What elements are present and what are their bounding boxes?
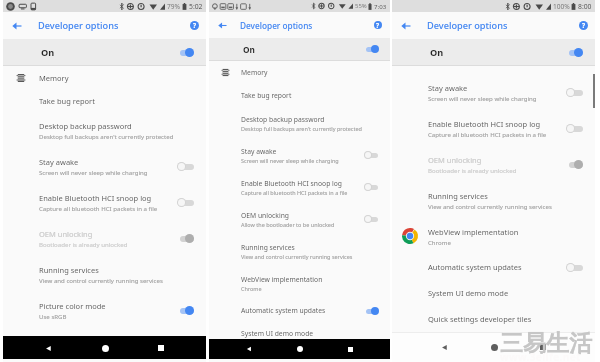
staticText: Desktop full backups aren't currently pr…: [39, 132, 174, 140]
staticText: WebView implementation: [241, 275, 323, 284]
staticText: Take bug report: [241, 91, 292, 100]
button[interactable]: OEM unlocking: [209, 203, 390, 235]
staticText: www.3elife.net: [500, 350, 581, 362]
button[interactable]: On: [3, 39, 206, 65]
staticText: Chrome: [428, 238, 451, 246]
staticText: Picture color mode: [39, 301, 106, 311]
staticText: Capture all bluetooth HCI packets in a f…: [39, 204, 158, 212]
staticText: Quick settings developer tiles: [428, 314, 532, 324]
staticText: Memory: [39, 73, 69, 83]
staticText: Allow the bootloader to be unlocked: [241, 221, 335, 228]
button[interactable]: Back: [41, 341, 55, 355]
button[interactable]: Enable Bluetooth HCI snoop log: [392, 110, 595, 146]
staticText: System UI demo mode: [241, 329, 314, 338]
button[interactable]: Enable Bluetooth HCI snoop log: [3, 184, 206, 220]
button[interactable]: Take bug report: [209, 84, 390, 107]
staticText: ?: [582, 21, 586, 30]
staticText: Automatic system updates: [241, 306, 326, 315]
staticText: System UI demo mode: [428, 288, 509, 298]
button[interactable]: Picture color mode: [3, 292, 206, 328]
button[interactable]: Stay awake: [3, 148, 206, 184]
staticText: Developer options: [38, 19, 119, 32]
staticText: 三易生活: [500, 329, 592, 358]
staticText: View and control currently running servi…: [428, 202, 552, 210]
staticText: Capture all bluetooth HCI packets in a f…: [241, 189, 348, 196]
staticText: OEM unlocking: [39, 229, 93, 239]
staticText: 8:00: [578, 2, 592, 11]
staticText: ?: [193, 21, 197, 30]
staticText: OEM unlocking: [428, 155, 482, 165]
staticText: Enable Bluetooth HCI snoop log: [241, 179, 343, 188]
button[interactable]: WebView implementation: [392, 218, 595, 254]
staticText: ?: [376, 21, 380, 29]
button[interactable]: Help: [571, 12, 595, 39]
button[interactable]: Desktop backup password: [3, 112, 206, 148]
staticText: Screen will never sleep while charging: [241, 157, 339, 164]
button[interactable]: Automatic system updates: [392, 254, 595, 280]
staticText: Enable Bluetooth HCI snoop log: [428, 119, 541, 129]
button[interactable]: Home: [293, 342, 307, 356]
staticText: Screen will never sleep while charging: [428, 94, 537, 102]
button[interactable]: Help: [182, 12, 206, 39]
button[interactable]: Running services: [3, 256, 206, 292]
button[interactable]: Enable Bluetooth HCI snoop log: [209, 171, 390, 203]
staticText: 7:03: [374, 2, 387, 10]
staticText: Desktop full backups aren't currently pr…: [241, 125, 362, 132]
staticText: 55%: [355, 2, 367, 10]
button[interactable]: Memory: [3, 66, 206, 89]
staticText: On: [430, 46, 444, 59]
staticText: View and control currently running servi…: [39, 276, 163, 284]
staticText: Stay awake: [39, 157, 79, 167]
button[interactable]: Desktop backup password: [209, 107, 390, 139]
staticText: Screen will never sleep while charging: [39, 168, 148, 176]
staticText: Capture all bluetooth HCI packets in a f…: [428, 130, 547, 138]
button[interactable]: Recent apps: [536, 340, 550, 354]
button[interactable]: Recent apps: [154, 341, 168, 355]
button[interactable]: Recent apps: [343, 342, 357, 356]
staticText: Desktop backup password: [39, 121, 132, 131]
button[interactable]: Navigate up: [392, 12, 427, 39]
staticText: On: [41, 46, 55, 59]
button[interactable]: Running services: [209, 235, 390, 267]
staticText: Developer options: [240, 20, 313, 31]
staticText: Take bug report: [39, 96, 95, 106]
button[interactable]: Stay awake: [392, 74, 595, 110]
button[interactable]: Take bug report: [3, 89, 206, 112]
staticText: Bootloader is already unlocked: [39, 240, 128, 248]
staticText: WebView implementation: [428, 227, 519, 237]
staticText: 79%: [167, 2, 181, 11]
staticText: 5:02: [189, 2, 203, 11]
staticText: Desktop backup password: [241, 115, 325, 124]
button[interactable]: OEM unlocking: [392, 146, 595, 182]
button[interactable]: OEM unlocking: [3, 220, 206, 256]
staticText: Running services: [241, 243, 295, 252]
button[interactable]: Home: [98, 341, 112, 355]
staticText: Running services: [428, 191, 488, 201]
button[interactable]: Memory: [209, 61, 390, 84]
button[interactable]: Navigate up: [3, 12, 38, 39]
button[interactable]: Quick settings developer tiles: [392, 306, 595, 332]
button[interactable]: On: [392, 39, 595, 65]
button[interactable]: Stay awake: [209, 139, 390, 171]
staticText: Memory: [241, 68, 268, 77]
staticText: Enable Bluetooth HCI snoop log: [39, 193, 152, 203]
button[interactable]: Home: [487, 340, 501, 354]
button[interactable]: Automatic system updates: [209, 299, 390, 322]
button[interactable]: Navigate up: [209, 12, 240, 38]
staticText: View and control currently running servi…: [241, 253, 353, 260]
staticText: Automatic system updates: [428, 262, 522, 272]
staticText: Stay awake: [428, 83, 468, 93]
staticText: Bootloader is already unlocked: [428, 166, 517, 174]
staticText: On: [243, 44, 255, 55]
button[interactable]: Back: [437, 340, 451, 354]
button[interactable]: On: [209, 38, 390, 60]
staticText: Developer options: [427, 19, 508, 32]
button[interactable]: Running services: [392, 182, 595, 218]
button[interactable]: Back: [242, 342, 256, 356]
button[interactable]: Help: [366, 12, 390, 38]
staticText: Use sRGB: [39, 312, 67, 320]
button[interactable]: WebView implementation: [209, 267, 390, 299]
button[interactable]: System UI demo mode: [392, 280, 595, 306]
staticText: Running services: [39, 265, 99, 275]
button[interactable]: System UI demo mode: [209, 322, 390, 345]
